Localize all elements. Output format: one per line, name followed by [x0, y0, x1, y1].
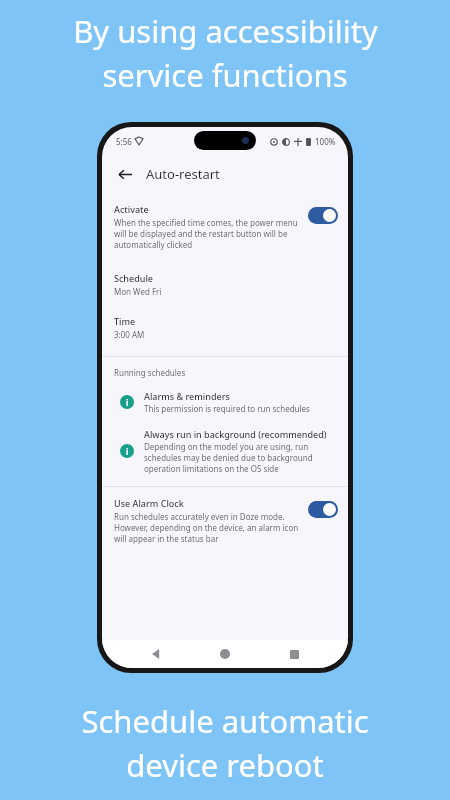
button[interactable]: Toggle: [308, 207, 338, 224]
staticText: Always run in background (recommended): [144, 428, 327, 440]
button[interactable]: Schedule: [102, 256, 348, 301]
button[interactable]: Back: [112, 161, 138, 187]
button[interactable]: Back: [141, 640, 171, 668]
staticText: When the specified time comes, the power…: [114, 217, 298, 250]
staticText: Schedule: [114, 272, 153, 284]
button[interactable]: Toggle: [308, 501, 338, 518]
button[interactable]: Home: [210, 640, 240, 668]
staticText: 100%: [315, 136, 336, 147]
staticText: Schedule automatic: [81, 700, 369, 742]
staticText: This permission is required to run sched…: [144, 403, 310, 414]
button[interactable]: Time: [102, 301, 348, 344]
staticText: Depending on the model you are using, ru…: [144, 441, 313, 474]
staticText: i: [126, 397, 129, 408]
staticText: device reboot: [126, 744, 324, 786]
staticText: Time: [114, 315, 136, 327]
staticText: Alarms & reminders: [144, 390, 230, 402]
staticText: Run schedules accurately even in Doze mo…: [114, 511, 299, 544]
staticText: Use Alarm Clock: [114, 497, 184, 509]
staticText: By using accessibility: [73, 10, 378, 52]
staticText: service functions: [102, 54, 348, 96]
button[interactable]: Activate: [102, 193, 348, 256]
button[interactable]: i: [102, 428, 348, 474]
button[interactable]: i: [102, 390, 348, 414]
button[interactable]: Use Alarm Clock: [102, 487, 348, 550]
button[interactable]: Recents: [279, 640, 309, 668]
staticText: 3:00 AM: [114, 329, 145, 340]
staticText: i: [126, 446, 129, 457]
staticText: Activate: [114, 203, 149, 215]
staticText: Auto-restart: [146, 165, 220, 183]
staticText: Running schedules: [114, 367, 186, 378]
staticText: Mon Wed Fri: [114, 286, 162, 297]
staticText: 5:56: [116, 136, 132, 147]
